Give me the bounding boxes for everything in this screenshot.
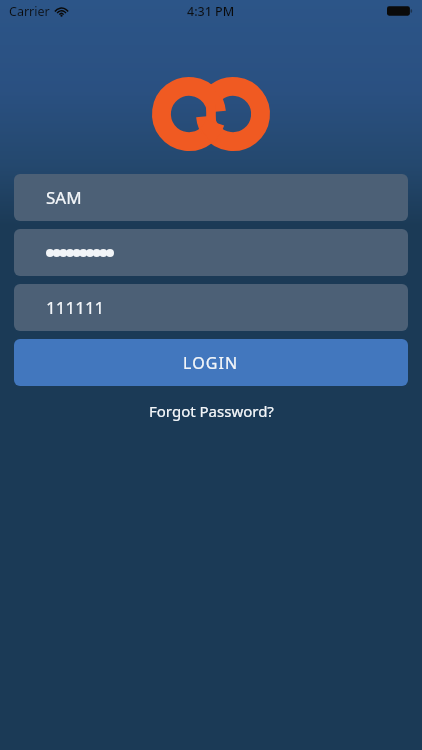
button[interactable]: SAM — [14, 174, 408, 221]
other: App logo — [152, 77, 270, 151]
staticText: 4:31 PM — [187, 3, 235, 20]
staticText: 111111 — [46, 296, 105, 319]
button[interactable] — [14, 229, 408, 276]
staticText: SAM — [46, 186, 82, 209]
button[interactable]: LOGIN — [14, 339, 408, 386]
staticText: Forgot Password? — [149, 401, 274, 421]
staticText: LOGIN — [183, 352, 239, 374]
button[interactable]: Forgot Password? — [139, 397, 284, 425]
staticText: Carrier — [9, 3, 50, 20]
button[interactable]: 111111 — [14, 284, 408, 331]
